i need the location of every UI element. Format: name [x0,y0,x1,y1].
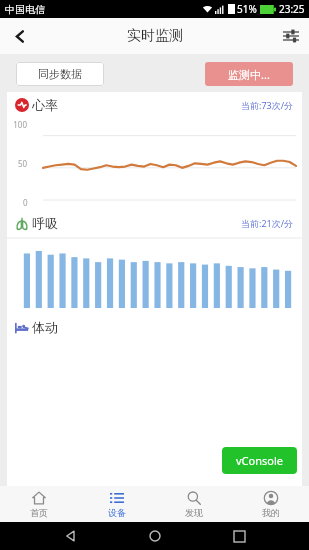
staticText: 设备 [108,507,126,518]
button[interactable]: Home [141,522,169,550]
button[interactable]: vConsole [222,447,297,474]
button[interactable]: 同步数据 [16,62,104,86]
button[interactable]: Recents [226,523,253,550]
button[interactable]: 首页 [0,486,78,522]
staticText: 50 [18,158,28,169]
button[interactable]: Settings [273,18,309,54]
staticText: 发现 [185,507,203,518]
button[interactable]: 设备 [78,486,155,522]
staticText: 我的 [262,507,280,518]
button[interactable]: 监测中... [205,62,293,86]
staticText: 23:25 [279,2,305,16]
button[interactable]: 我的 [232,486,309,522]
button[interactable]: Back [0,18,40,54]
staticText: 51% [237,2,257,16]
button[interactable]: Back [57,522,85,550]
staticText: 体动 [32,319,58,335]
staticText: 当前:21次/分 [241,217,294,229]
staticText: 当前:73次/分 [241,99,294,111]
staticText: 同步数据 [38,67,82,81]
staticText: 0 [23,197,28,208]
staticText: 呼吸 [32,215,58,231]
staticText: 监测中... [228,67,270,82]
staticText: 中国电信 [5,3,45,16]
staticText: 实时监测 [127,27,183,45]
staticText: vConsole [236,453,283,468]
button[interactable]: 发现 [155,486,232,522]
staticText: 心率 [32,97,58,113]
staticText: 首页 [30,507,48,518]
staticText: 100 [13,119,27,130]
